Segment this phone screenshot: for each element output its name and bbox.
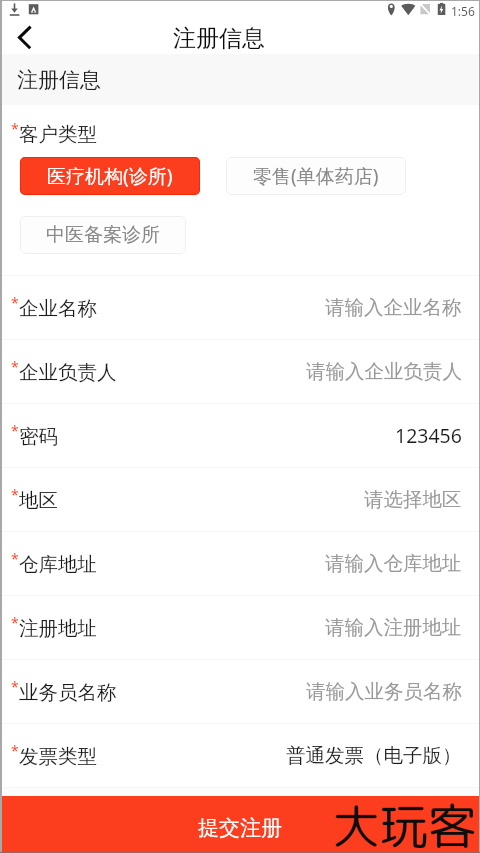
staticText: 123456 <box>395 422 462 449</box>
staticText: 医疗机构(诊所) <box>47 163 173 189</box>
button[interactable]: 中医备案诊所 <box>20 216 186 254</box>
staticText: 中医备案诊所 <box>46 223 160 247</box>
staticText: 密码 <box>19 424 58 449</box>
staticText: * <box>11 293 19 312</box>
staticText: 请输入业务员名称 <box>306 679 462 704</box>
staticText: * <box>11 741 19 760</box>
staticText: * <box>11 549 19 568</box>
button[interactable]: 零售(单体药店) <box>226 157 406 195</box>
staticText: 地区 <box>19 488 58 513</box>
staticText: 仓库地址 <box>19 552 97 577</box>
button[interactable]: * <box>0 660 480 723</box>
staticText: 零售(单体药店) <box>253 163 379 189</box>
staticText: * <box>11 421 19 440</box>
staticText: * <box>11 485 19 504</box>
staticText: 业务员名称 <box>19 680 117 705</box>
button[interactable]: * <box>0 724 480 787</box>
staticText: * <box>11 119 19 138</box>
button[interactable]: * <box>0 468 480 531</box>
staticText: 注册地址 <box>19 616 97 641</box>
staticText: 注册信息 <box>17 67 101 93</box>
button[interactable]: * <box>0 276 480 339</box>
staticText: * <box>11 613 19 632</box>
button[interactable]: * <box>0 340 480 403</box>
staticText: * <box>11 677 19 696</box>
staticText: 大玩客 <box>332 792 477 853</box>
button[interactable]: 医疗机构(诊所) <box>20 157 200 195</box>
staticText: 企业负责人 <box>19 360 117 385</box>
button[interactable]: * <box>0 404 480 467</box>
staticText: 请输入企业名称 <box>325 295 462 320</box>
staticText: 客户类型 <box>19 122 97 147</box>
staticText: 请输入仓库地址 <box>325 551 462 576</box>
staticText: 发票类型 <box>19 744 97 769</box>
button[interactable]: * <box>0 532 480 595</box>
staticText: 企业名称 <box>19 296 97 321</box>
staticText: 注册信息 <box>173 24 265 53</box>
staticText: 请选择地区 <box>364 487 462 512</box>
staticText: 提交注册 <box>198 815 282 841</box>
staticText: 请输入企业负责人 <box>306 359 462 384</box>
staticText: * <box>11 357 19 376</box>
button[interactable]: Back <box>0 22 48 54</box>
button[interactable]: * <box>0 596 480 659</box>
staticText: 普通发票（电子版） <box>286 743 462 768</box>
staticText: 1:56 <box>451 3 475 19</box>
staticText: 请输入注册地址 <box>325 615 462 640</box>
button[interactable]: 提交注册 <box>0 796 480 853</box>
